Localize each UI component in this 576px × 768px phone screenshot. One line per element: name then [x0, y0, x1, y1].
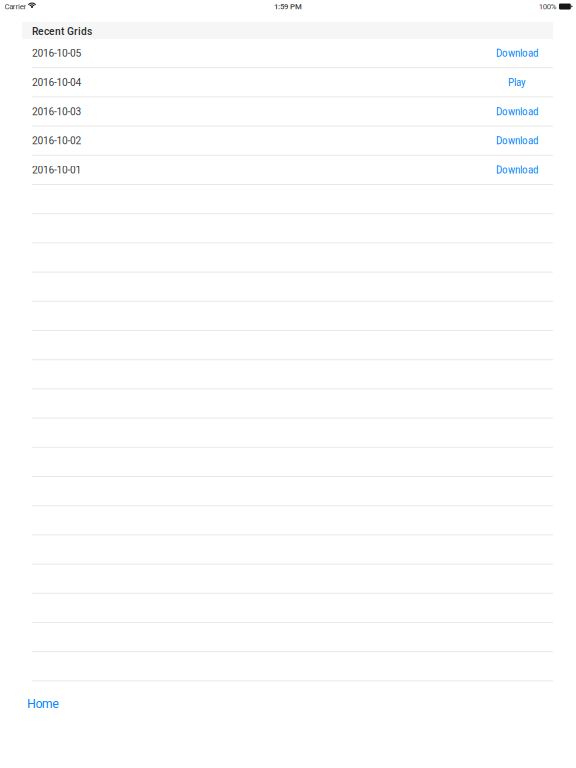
staticText: 2016-10-05 — [32, 47, 81, 59]
staticText: Home — [27, 696, 59, 711]
staticText: Download — [496, 47, 538, 59]
staticText: Download — [496, 105, 538, 118]
button[interactable]: Download — [469, 127, 565, 155]
staticText: Play — [508, 76, 526, 88]
staticText: 2016-10-03 — [32, 105, 81, 118]
button[interactable]: Download — [469, 97, 565, 126]
button[interactable]: Home — [27, 696, 59, 711]
staticText: 1:59 PM — [274, 2, 302, 11]
staticText: Download — [496, 164, 538, 176]
button[interactable]: Download — [469, 156, 565, 184]
staticText: Carrier — [4, 2, 26, 11]
staticText: Download — [496, 134, 538, 147]
staticText: 2016-10-01 — [32, 164, 81, 176]
staticText: Recent Grids — [32, 25, 92, 37]
button[interactable]: Download — [469, 39, 565, 67]
staticText: 2016-10-04 — [32, 76, 81, 88]
staticText: 2016-10-02 — [32, 134, 81, 147]
button[interactable]: Play — [469, 68, 565, 96]
staticText: 100% — [539, 2, 557, 11]
